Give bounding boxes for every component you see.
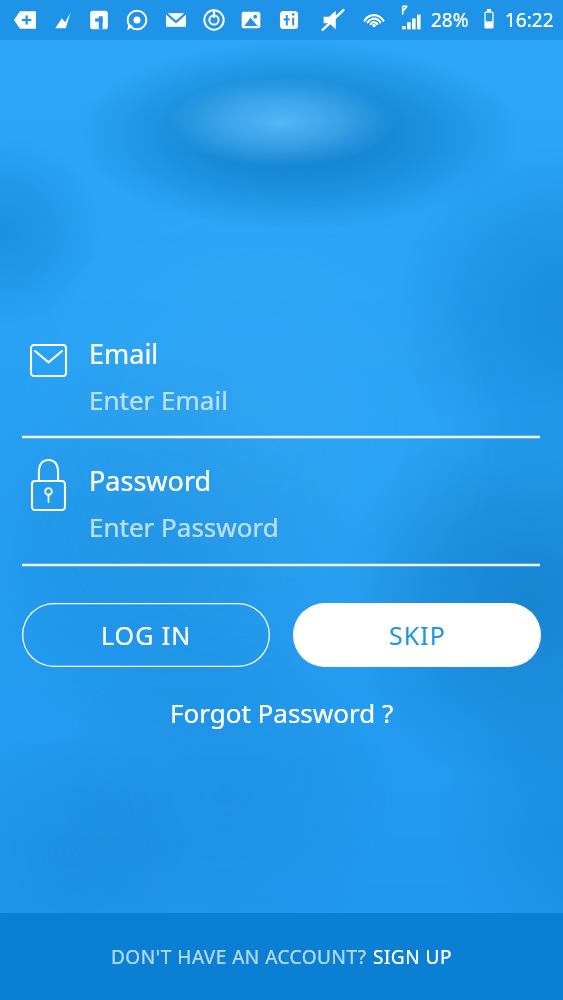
staticText: 16:22 <box>505 7 554 33</box>
staticText: SIGN UP <box>373 944 452 970</box>
button[interactable]: DON'T HAVE AN ACCOUNT? <box>0 913 563 1000</box>
button[interactable]: Password field <box>0 459 563 565</box>
staticText: Enter Email <box>89 382 228 417</box>
staticText: Email <box>89 335 159 372</box>
staticText: SKIP <box>389 618 446 652</box>
staticText: Enter Password <box>89 509 279 544</box>
staticText: 28% <box>431 7 469 33</box>
button[interactable]: SKIP <box>293 603 541 667</box>
button[interactable]: Email field <box>0 331 563 437</box>
staticText: Password <box>89 462 212 499</box>
staticText: Forgot Password ? <box>170 695 394 730</box>
staticText: DON'T HAVE AN ACCOUNT? <box>111 944 373 970</box>
button[interactable]: Forgot Password ? <box>156 690 408 735</box>
staticText: LOG IN <box>101 618 192 652</box>
button[interactable]: LOG IN <box>22 603 270 667</box>
